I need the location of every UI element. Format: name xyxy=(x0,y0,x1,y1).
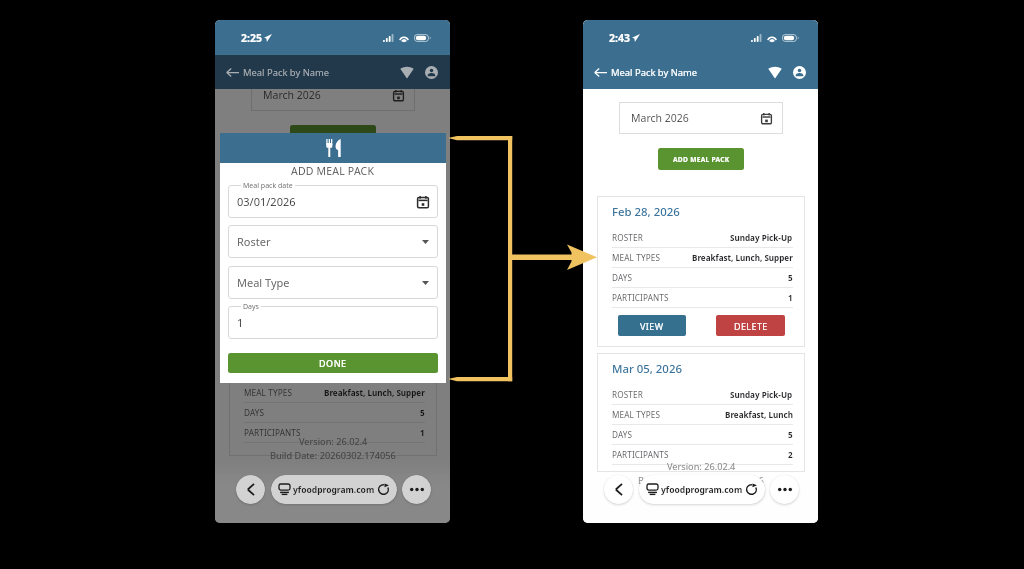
staticText: DELETE xyxy=(734,320,768,332)
button[interactable]: Account xyxy=(420,61,442,83)
staticText: Meal Pack by Name xyxy=(243,66,330,79)
button[interactable]: Meal Type xyxy=(228,266,438,299)
staticText: Breakfast, Lunch, Supper xyxy=(324,387,425,398)
button[interactable]: March 2026 xyxy=(619,102,783,134)
staticText: MEAL TYPES xyxy=(612,252,661,263)
button[interactable]: 03/01/2026 xyxy=(228,185,438,218)
staticText: ROSTER xyxy=(612,389,643,400)
staticText: Breakfast, Lunch xyxy=(725,409,793,420)
staticText: 1 xyxy=(420,427,425,438)
button[interactable]: 1 xyxy=(228,306,438,339)
staticText: Breakfast, Lunch, Supper xyxy=(692,252,793,263)
staticText: DAYS xyxy=(612,272,633,283)
staticText: Days xyxy=(243,302,259,312)
button[interactable]: More options xyxy=(402,475,431,504)
button[interactable]: yfoodprogram.com xyxy=(639,475,765,504)
button[interactable]: ADD MEAL PACK xyxy=(290,125,376,147)
staticText: PARTICIPANTS xyxy=(612,449,669,460)
staticText: 2:25 xyxy=(241,31,262,45)
staticText: 5 xyxy=(788,272,793,283)
staticText: MEAL TYPES xyxy=(244,387,293,398)
button[interactable]: VIEW xyxy=(618,315,686,336)
staticText: VIEW xyxy=(640,320,664,332)
button[interactable]: Account xyxy=(788,61,810,83)
staticText: DAYS xyxy=(244,407,265,418)
staticText: MEAL TYPES xyxy=(612,409,661,420)
button[interactable]: Network status xyxy=(396,61,418,83)
staticText: Version: 26.02.4 xyxy=(299,435,368,448)
button[interactable]: DONE xyxy=(228,353,438,373)
staticText: DAYS xyxy=(612,429,633,440)
button[interactable]: DELETE xyxy=(716,315,785,336)
staticText: 2:43 xyxy=(609,31,630,45)
staticText: ADD MEAL PACK xyxy=(291,164,375,178)
staticText: 1 xyxy=(788,292,793,303)
staticText: Roster xyxy=(237,234,271,249)
staticText: PARTICIPANTS xyxy=(612,292,669,303)
staticText: Meal pack date xyxy=(243,181,293,191)
staticText: DONE xyxy=(319,357,347,369)
button[interactable]: Back xyxy=(222,62,243,83)
staticText: Build Date: 20260302.174056 xyxy=(638,474,764,487)
staticText: Meal Type xyxy=(237,275,290,290)
staticText: March 2026 xyxy=(263,88,321,102)
staticText: Meal Pack by Name xyxy=(611,66,698,79)
staticText: ROSTER xyxy=(612,232,643,243)
button[interactable]: Network status xyxy=(764,61,786,83)
staticText: ADD MEAL PACK xyxy=(305,132,362,141)
staticText: Mar 05, 2026 xyxy=(612,361,682,377)
button[interactable]: Back xyxy=(590,62,611,83)
staticText: PARTICIPANTS xyxy=(244,427,301,438)
button[interactable]: March 2026 xyxy=(251,79,415,111)
staticText: 03/01/2026 xyxy=(237,194,296,209)
staticText: 5 xyxy=(788,429,793,440)
staticText: Version: 26.02.4 xyxy=(667,460,736,473)
staticText: Feb 28, 2026 xyxy=(612,204,680,220)
button[interactable]: Back xyxy=(236,475,265,504)
staticText: yfoodprogram.com xyxy=(661,484,743,496)
button[interactable]: ADD MEAL PACK xyxy=(658,148,744,170)
button[interactable]: More options xyxy=(770,475,799,504)
staticText: March 2026 xyxy=(631,111,689,125)
staticText: 2 xyxy=(788,449,793,460)
staticText: ADD MEAL PACK xyxy=(673,155,730,164)
button[interactable]: Back xyxy=(604,475,633,504)
staticText: yfoodprogram.com xyxy=(293,484,375,496)
staticText: Sunday Pick-Up xyxy=(730,389,793,400)
staticText: Build Date: 20260302.174056 xyxy=(270,449,396,462)
staticText: Sunday Pick-Up xyxy=(730,232,793,243)
staticText: 5 xyxy=(420,407,425,418)
button[interactable]: Roster xyxy=(228,225,438,258)
button[interactable]: yfoodprogram.com xyxy=(271,475,397,504)
staticText: 1 xyxy=(237,315,244,330)
